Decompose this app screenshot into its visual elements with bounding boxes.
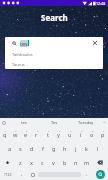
button[interactable]: Tuesday (70, 118, 101, 127)
button[interactable]: t (42, 127, 53, 141)
button[interactable]: ?123 (0, 169, 16, 180)
button[interactable]: More suggestions (101, 118, 108, 127)
staticText: 8 (81, 129, 83, 132)
button[interactable]: f (37, 141, 48, 155)
staticText: 2 (15, 129, 17, 132)
staticText: 1 (5, 129, 7, 132)
staticText: b (63, 159, 67, 166)
button[interactable]: n (70, 155, 81, 169)
button[interactable]: Backspace (92, 155, 108, 169)
button[interactable]: v (48, 155, 59, 169)
button[interactable]: Clipboard suggestions (0, 118, 8, 127)
button[interactable]: q (0, 127, 10, 141)
staticText: g (52, 145, 56, 152)
staticText: r (35, 131, 38, 138)
button[interactable]: g (48, 141, 59, 155)
button[interactable]: l (92, 141, 103, 155)
staticText: . (86, 171, 88, 178)
button[interactable]: a (5, 141, 15, 155)
staticText: m (84, 159, 90, 166)
button[interactable]: c (37, 155, 48, 169)
staticText: 3 (26, 129, 28, 132)
button[interactable]: w (10, 127, 20, 141)
button[interactable]: Taurus (5, 59, 103, 69)
staticText: 12:48 (96, 1, 106, 6)
button[interactable]: Clear (91, 39, 99, 47)
button[interactable]: e (20, 127, 31, 141)
button[interactable]: r (31, 127, 42, 141)
staticText: 0 (103, 129, 105, 132)
button[interactable]: s (15, 141, 26, 155)
staticText: , (21, 171, 23, 178)
button[interactable]: z (15, 155, 26, 169)
staticText: ?123 (4, 172, 12, 177)
staticText: n (74, 159, 78, 166)
button[interactable]: y (53, 127, 64, 141)
staticText: Tathbaulos (12, 52, 33, 57)
staticText: tes (20, 40, 28, 47)
button[interactable]: j (70, 141, 81, 155)
button[interactable]: d (26, 141, 37, 155)
staticText: f (42, 145, 44, 152)
staticText: e (24, 131, 28, 138)
button[interactable]: Search (92, 169, 108, 180)
button[interactable]: Emoji (27, 169, 38, 180)
button[interactable]: o (86, 127, 97, 141)
button[interactable]: i (75, 127, 86, 141)
button[interactable]: . (81, 169, 92, 180)
staticText: 5 (48, 129, 50, 132)
staticText: d (30, 145, 34, 152)
staticText: l (97, 145, 99, 152)
button[interactable]: Shift (0, 155, 15, 169)
staticText: x (30, 159, 33, 166)
staticText: 7 (70, 129, 72, 132)
button[interactable]: Tathbaulos (5, 49, 103, 59)
staticText: 9 (92, 129, 94, 132)
staticText: s (19, 145, 22, 152)
button[interactable]: Tes (39, 118, 70, 127)
staticText: v (52, 159, 55, 166)
staticText: o (90, 131, 94, 138)
staticText: j (75, 145, 77, 152)
staticText: Search (41, 12, 68, 23)
staticText: k (85, 145, 88, 152)
staticText: i (80, 131, 82, 138)
staticText: p (101, 131, 105, 138)
button[interactable]: u (64, 127, 75, 141)
button[interactable]: b (59, 155, 70, 169)
staticText: y (57, 131, 60, 138)
staticText: 6 (59, 129, 61, 132)
button[interactable]: x (26, 155, 37, 169)
staticText: u (68, 131, 72, 138)
staticText: tes (21, 120, 27, 125)
button[interactable]: m (81, 155, 92, 169)
staticText: z (19, 159, 22, 166)
button[interactable]: h (59, 141, 70, 155)
button[interactable]: , (16, 169, 27, 180)
staticText: Tuesday (78, 120, 94, 125)
staticText: c (41, 159, 44, 166)
staticText: q (3, 131, 7, 138)
staticText: Taurus (12, 62, 25, 67)
staticText: Tes (51, 120, 58, 125)
staticText: t (47, 131, 49, 138)
button[interactable]: k (81, 141, 92, 155)
staticText: h (63, 145, 67, 152)
button[interactable]: p (97, 127, 108, 141)
staticText: w (13, 131, 18, 138)
button[interactable]: tes (5, 37, 103, 49)
button[interactable]: tes (8, 118, 39, 127)
staticText: 4 (37, 129, 39, 132)
staticText: a (8, 145, 12, 152)
